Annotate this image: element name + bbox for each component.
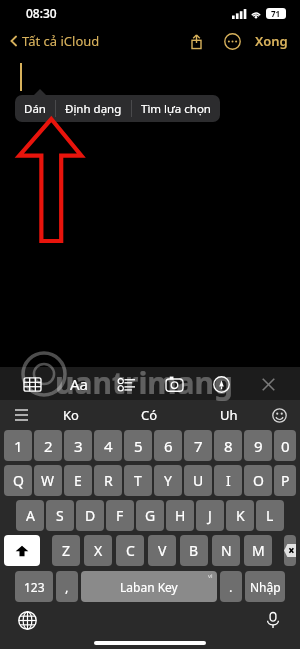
button[interactable]: G [136, 500, 164, 531]
staticText: 3 [74, 436, 83, 456]
button[interactable]: Dán [15, 95, 55, 122]
button[interactable]: F [106, 500, 134, 531]
staticText: Ko [63, 406, 79, 424]
button[interactable]: V [148, 535, 176, 566]
staticText: , [65, 578, 69, 596]
staticText: F [116, 506, 124, 525]
button[interactable]: L [256, 500, 284, 531]
button[interactable]: Có [110, 400, 189, 430]
button[interactable]: W [34, 465, 62, 496]
button[interactable]: 123 [15, 571, 53, 602]
staticText: R [104, 471, 113, 490]
button[interactable]: 3 [64, 430, 92, 461]
button[interactable]: Ko [32, 400, 110, 430]
button[interactable]: Định dạng [56, 95, 131, 122]
button[interactable]: Camera [159, 371, 189, 397]
button[interactable]: C [116, 535, 144, 566]
button[interactable]: 0 [274, 430, 296, 461]
staticText: Nhập [250, 579, 281, 595]
button[interactable] [284, 535, 296, 566]
button[interactable]: 9 [244, 430, 272, 461]
staticText: D [85, 506, 96, 525]
button[interactable]: 5 [124, 430, 152, 461]
button[interactable]: Change keyboard [12, 605, 42, 635]
staticText: X [94, 541, 103, 560]
button[interactable]: Tất cả iCloud [6, 32, 100, 50]
staticText: Z [62, 541, 71, 560]
button[interactable]: K [226, 500, 254, 531]
staticText: G [145, 506, 156, 525]
button[interactable]: Share [183, 28, 209, 54]
staticText: Tất cả iCloud [22, 32, 100, 50]
staticText: 7 [194, 436, 203, 456]
button[interactable]: . [220, 571, 242, 602]
button[interactable]: U [184, 465, 212, 496]
button[interactable]: Xong [253, 32, 290, 50]
staticText: A [26, 506, 35, 525]
staticText: O [253, 471, 264, 490]
button[interactable]: H [166, 500, 194, 531]
button[interactable]: Nhập [245, 571, 285, 602]
staticText: B [189, 541, 199, 560]
button[interactable]: Aa [64, 371, 94, 397]
staticText: S [56, 506, 64, 525]
button[interactable]: D [76, 500, 104, 531]
button[interactable]: T [124, 465, 152, 496]
button[interactable]: Tìm lựa chọn [132, 95, 220, 122]
button[interactable]: O [244, 465, 272, 496]
button[interactable]: Table [17, 371, 47, 397]
button[interactable]: Close [253, 371, 283, 397]
button[interactable]: S [46, 500, 74, 531]
button[interactable]: 7 [184, 430, 212, 461]
button[interactable]: N [212, 535, 240, 566]
button[interactable]: 8 [214, 430, 242, 461]
button[interactable]: Checklist [111, 371, 141, 397]
staticText: Laban Key [120, 579, 178, 595]
button[interactable]: Y [154, 465, 182, 496]
button[interactable]: A [16, 500, 44, 531]
staticText: I [226, 471, 231, 490]
staticText: M [252, 541, 265, 560]
staticText: 0 [281, 436, 290, 456]
button[interactable]: Voice input [258, 605, 288, 635]
staticText: N [221, 541, 232, 560]
button[interactable]: Markup [206, 371, 236, 397]
button[interactable]: X [84, 535, 112, 566]
button[interactable]: Laban Key [81, 571, 217, 602]
button[interactable]: I [214, 465, 242, 496]
staticText: Xong [255, 32, 288, 50]
staticText: 71 [271, 8, 281, 19]
staticText: T [134, 471, 142, 490]
staticText: E [74, 471, 82, 490]
button[interactable]: , [56, 571, 78, 602]
button[interactable]: Z [52, 535, 80, 566]
button[interactable]: M [244, 535, 272, 566]
button[interactable]: More options [219, 28, 245, 54]
button[interactable]: Emoji [268, 404, 290, 426]
button[interactable]: J [196, 500, 224, 531]
button[interactable]: 4 [94, 430, 122, 461]
staticText: H [175, 506, 186, 525]
staticText: 6 [164, 436, 173, 456]
button[interactable]: Menu [10, 404, 32, 426]
staticText: Định dạng [65, 101, 122, 117]
staticText: Uh [220, 406, 238, 424]
button[interactable]: 6 [154, 430, 182, 461]
staticText: C [126, 541, 135, 560]
staticText: Y [164, 471, 172, 490]
staticText: L [266, 506, 274, 525]
button[interactable]: E [64, 465, 92, 496]
button[interactable]: R [94, 465, 122, 496]
button[interactable]: Q [4, 465, 32, 496]
button[interactable]: B [180, 535, 208, 566]
staticText: . [229, 578, 233, 596]
staticText: 08:30 [26, 5, 57, 21]
button[interactable]: Uh [189, 400, 268, 430]
button[interactable]: P [274, 465, 296, 496]
staticText: Tìm lựa chọn [141, 101, 211, 117]
staticText: 5 [134, 436, 143, 456]
button[interactable] [4, 535, 40, 566]
button[interactable]: 2 [34, 430, 62, 461]
staticText: Q [13, 471, 24, 490]
button[interactable]: 1 [4, 430, 32, 461]
